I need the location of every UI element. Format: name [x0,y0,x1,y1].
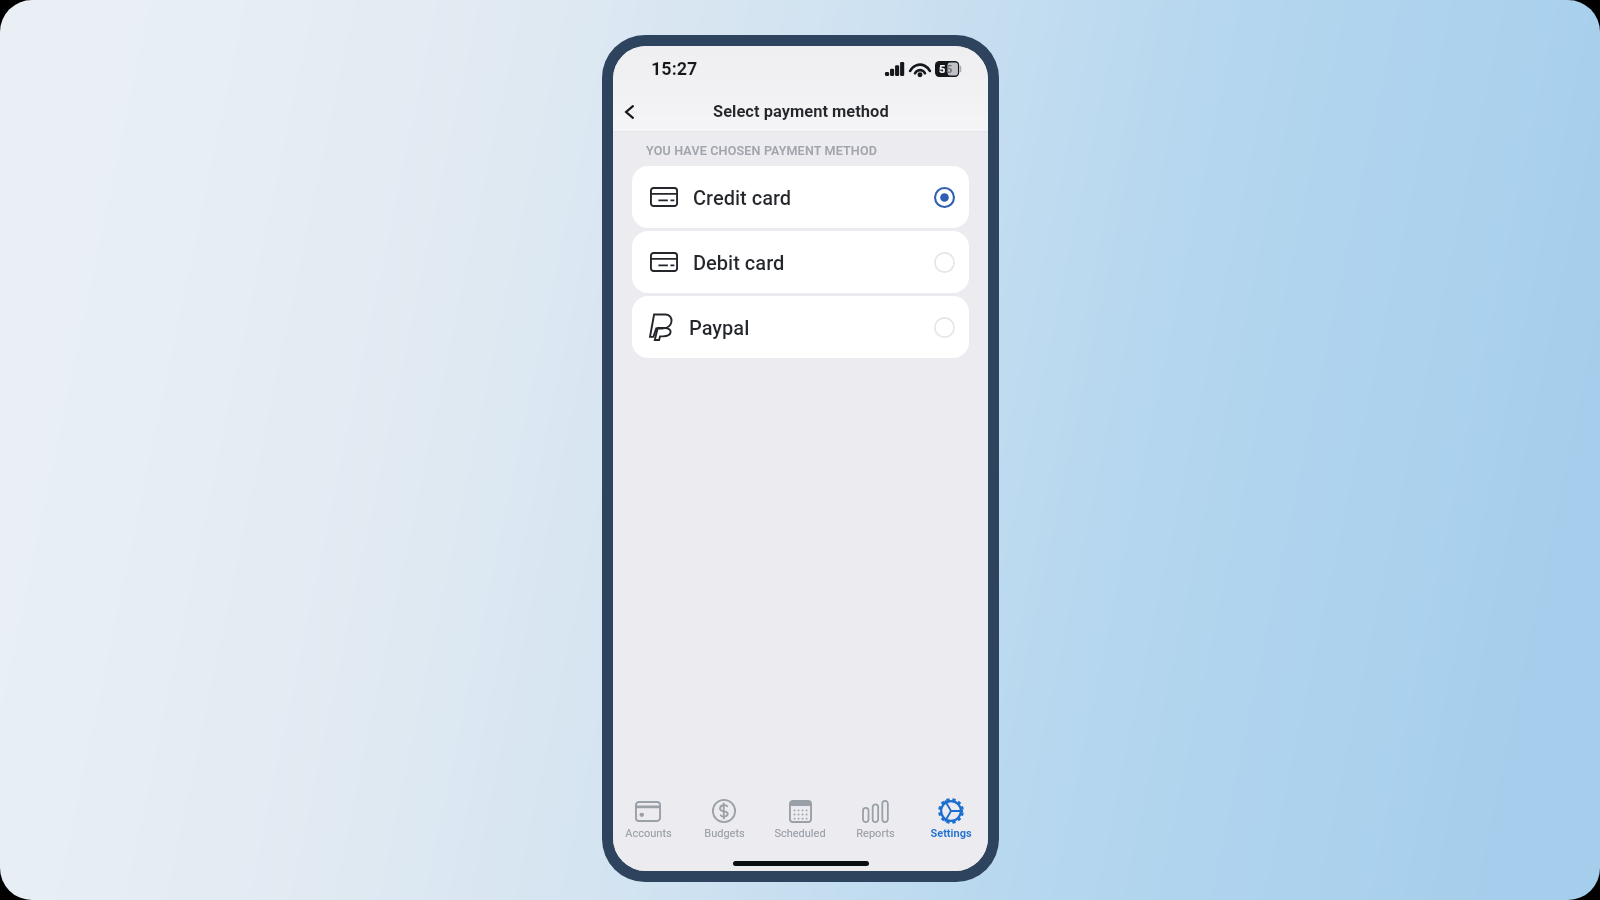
button[interactable]: Accounts [613,798,683,846]
staticText: Credit card [693,186,792,209]
staticText: YOU HAVE CHOSEN PAYMENT METHOD [646,143,878,158]
staticText: Settings [930,827,972,840]
staticText: Budgets [704,827,745,840]
staticText: 5 [946,63,953,76]
staticText: 5 [939,63,946,76]
button[interactable]: Settings [916,798,986,846]
staticText: 15:27 [651,58,698,79]
staticText: Scheduled [774,827,826,840]
button[interactable]: Reports [840,798,910,846]
button[interactable]: Credit card [632,166,969,228]
button[interactable]: Budgets [689,798,759,846]
button[interactable]: Scheduled [765,798,835,846]
staticText: Debit card [693,251,785,274]
staticText: Select payment method [713,102,889,121]
staticText: Paypal [689,316,750,339]
button[interactable]: Paypal [632,296,969,358]
button[interactable]: Back [613,96,645,128]
staticText: Reports [856,827,895,840]
button[interactable]: Debit card [632,231,969,293]
staticText: Accounts [625,827,672,840]
